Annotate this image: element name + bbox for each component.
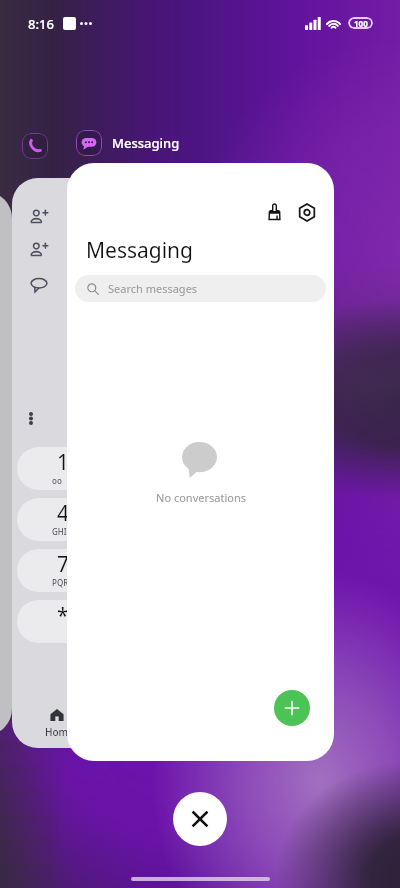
button[interactable]: Messaging app (76, 130, 102, 156)
staticText: 1 (57, 448, 70, 477)
staticText: Messaging (112, 134, 180, 152)
staticText: 7 (57, 550, 70, 579)
button[interactable]: Settings (292, 197, 322, 227)
button[interactable]: Clean up (259, 197, 289, 227)
button[interactable]: 1 (12, 178, 162, 748)
staticText: 100 (354, 18, 368, 29)
staticText: GHI (52, 526, 67, 537)
button[interactable]: * (17, 600, 105, 643)
button[interactable]: Clean up (67, 163, 334, 761)
button[interactable]: Start new conversation (274, 690, 310, 726)
staticText: oo (52, 475, 62, 486)
button[interactable] (0, 192, 12, 735)
staticText: No conversations (156, 490, 246, 505)
button[interactable]: Search messages (75, 275, 326, 302)
staticText: 8:16 (28, 15, 54, 33)
button[interactable]: Phone app (22, 133, 48, 159)
button[interactable]: 7 (17, 549, 105, 592)
staticText: * (57, 601, 69, 630)
staticText: Home (45, 725, 74, 739)
staticText: 4 (57, 499, 70, 528)
staticText: Messaging (86, 236, 194, 265)
button[interactable]: Close all (173, 792, 227, 846)
staticText: Search messages (108, 281, 198, 296)
button[interactable]: 4 (17, 498, 105, 541)
button[interactable]: 1 (17, 447, 105, 490)
staticText: PQRS (52, 577, 73, 588)
